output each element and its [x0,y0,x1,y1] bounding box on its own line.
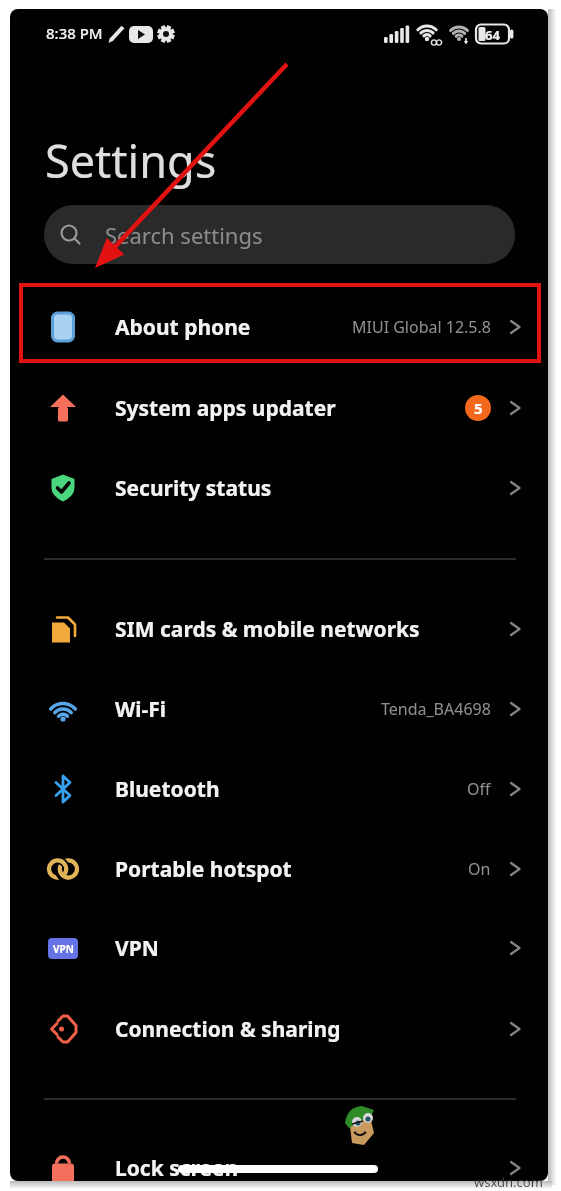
button[interactable]: About phone [10,287,548,367]
button[interactable]: Lock screen [10,1128,548,1181]
staticText: Wi-Fi [115,695,167,724]
staticText: Bluetooth [115,775,220,804]
staticText: Search settings [105,220,263,250]
staticText: Settings [45,130,217,191]
staticText: 64 [485,26,500,44]
button[interactable]: Portable hotspot [10,829,548,909]
staticText: Security status [115,474,272,503]
staticText: Connection & sharing [115,1015,341,1044]
button[interactable]: VPN [10,908,548,988]
staticText: wsxdn.com [474,1173,543,1191]
button[interactable]: SIM cards & mobile networks [10,589,548,669]
button[interactable]: System apps updater [10,368,548,448]
button[interactable]: Search settings [44,205,515,264]
staticText: Lock screen [115,1154,239,1181]
staticText: On [468,858,491,880]
staticText: SIM cards & mobile networks [115,615,420,644]
staticText: System apps updater [115,394,336,423]
staticText: 5 [474,398,483,418]
staticText: Off [467,778,491,800]
staticText: About phone [115,313,251,342]
staticText: VPN [53,942,74,956]
button[interactable]: Wi-Fi [10,669,548,749]
staticText: VPN [115,934,159,963]
staticText: Tenda_BA4698 [381,698,491,720]
button[interactable]: Security status [10,448,548,528]
staticText: 8:38 PM [46,23,103,43]
staticText: Portable hotspot [115,855,292,884]
button[interactable]: Connection & sharing [10,989,548,1069]
button[interactable]: Bluetooth [10,749,548,829]
staticText: MIUI Global 12.5.8 [352,316,491,338]
